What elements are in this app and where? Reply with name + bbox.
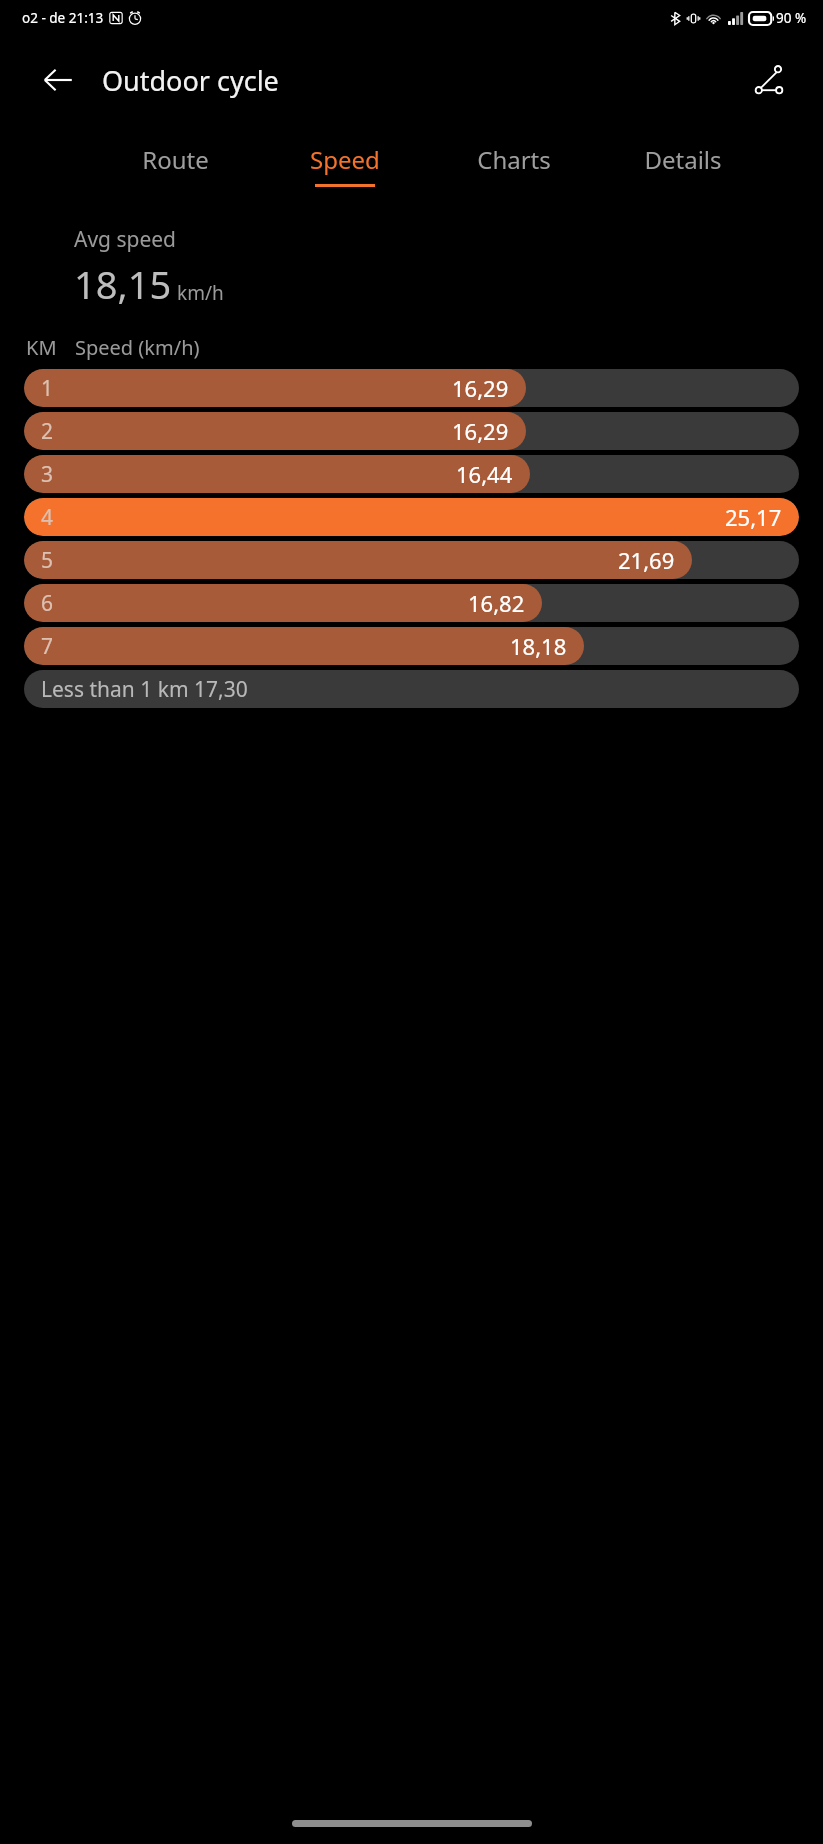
- staticText: 16,29: [452, 416, 509, 446]
- staticText: Speed: [310, 143, 380, 176]
- button[interactable]: Route: [90, 143, 260, 187]
- staticText: o2 - de 21:13: [22, 9, 104, 27]
- staticText: 25,17: [725, 502, 782, 532]
- button[interactable]: 16,44: [24, 455, 799, 493]
- staticText: 18,18: [510, 631, 567, 661]
- staticText: Route: [142, 143, 209, 176]
- staticText: Outdoor cycle: [102, 62, 279, 99]
- staticText: Charts: [477, 143, 551, 176]
- button[interactable]: 16,82: [24, 584, 799, 622]
- staticText: Speed (km/h): [75, 334, 200, 361]
- staticText: 18,15: [74, 258, 172, 310]
- button[interactable]: 16,29: [24, 412, 799, 450]
- staticText: 90 %: [776, 9, 807, 27]
- staticText: 7: [41, 632, 54, 661]
- button[interactable]: Back: [34, 56, 82, 104]
- staticText: 16,44: [456, 459, 513, 489]
- staticText: 21,69: [618, 545, 675, 575]
- button[interactable]: Less than 1 km 17,30: [24, 670, 799, 708]
- staticText: 16,29: [452, 373, 509, 403]
- staticText: 1: [41, 374, 54, 403]
- button[interactable]: 16,29: [24, 369, 799, 407]
- staticText: 6: [41, 589, 54, 618]
- button[interactable]: 25,17: [24, 498, 799, 536]
- staticText: 4: [41, 503, 54, 532]
- staticText: 16,82: [468, 588, 525, 618]
- button[interactable]: 18,18: [24, 627, 799, 665]
- button[interactable]: 21,69: [24, 541, 799, 579]
- button[interactable]: Share: [745, 56, 793, 104]
- staticText: 5: [41, 546, 54, 575]
- staticText: Details: [644, 143, 722, 176]
- staticText: 3: [41, 460, 54, 489]
- staticText: 2: [41, 417, 54, 446]
- button[interactable]: Charts: [429, 143, 598, 187]
- staticText: Avg speed: [74, 225, 177, 254]
- button[interactable]: Details: [598, 143, 767, 187]
- staticText: KM: [26, 334, 57, 361]
- staticText: Less than 1 km 17,30: [41, 675, 248, 704]
- staticText: km/h: [177, 280, 224, 306]
- button[interactable]: Speed: [260, 143, 429, 187]
